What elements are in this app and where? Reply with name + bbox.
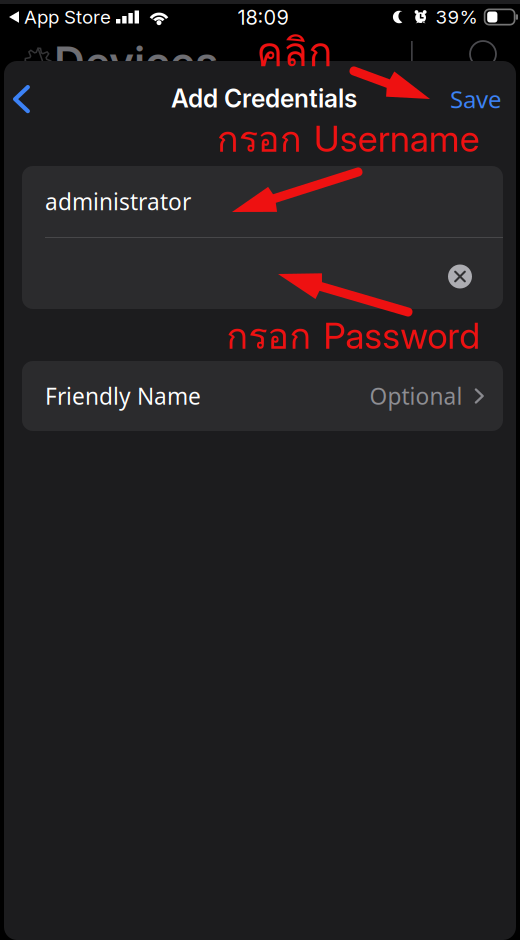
staticText: กรอก Username	[216, 110, 479, 168]
staticText: App Store	[24, 6, 111, 28]
staticText: Optional	[370, 381, 463, 411]
staticText: Friendly Name	[45, 381, 201, 411]
staticText: administrator	[45, 186, 191, 216]
staticText: 39%	[436, 6, 478, 28]
staticText: กรอก Password	[226, 307, 480, 365]
staticText: 18:09	[237, 5, 288, 30]
button[interactable]: Save	[432, 70, 516, 128]
button[interactable]: Friendly Name	[22, 361, 503, 431]
staticText: Save	[450, 83, 502, 115]
staticText: Devices	[54, 36, 218, 88]
button[interactable]: Clear text	[442, 255, 478, 291]
button[interactable]: Back	[4, 72, 50, 126]
staticText: คลิก	[256, 20, 332, 84]
staticText: Add Credentials	[171, 84, 357, 113]
